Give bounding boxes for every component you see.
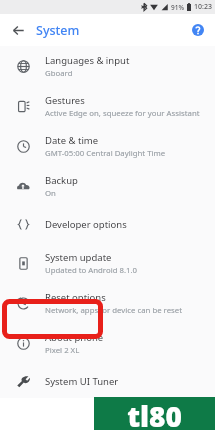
- staticText: Gboard: [45, 68, 73, 79]
- staticText: System UI Tuner: [45, 375, 119, 388]
- button[interactable]: Backup: [0, 166, 215, 206]
- staticText: System update: [45, 251, 112, 264]
- staticText: tl80: [127, 397, 182, 430]
- staticText: Pixel 2 XL: [45, 345, 80, 356]
- staticText: 91%: [171, 3, 184, 12]
- button[interactable]: Languages & input: [0, 46, 215, 86]
- staticText: Updated to Android 8.1.0: [45, 265, 138, 276]
- staticText: Network, apps, or device can be reset: [45, 305, 183, 316]
- button[interactable]: System update: [0, 243, 215, 283]
- staticText: Date & time: [45, 134, 99, 147]
- staticText: Developer options: [45, 218, 127, 231]
- staticText: Gestures: [45, 94, 85, 107]
- button[interactable]: System UI Tuner: [0, 363, 215, 400]
- button[interactable]: About phone: [0, 323, 215, 363]
- button[interactable]: Gestures: [0, 86, 215, 126]
- button[interactable]: Reset options: [0, 283, 215, 323]
- staticText: Reset options: [45, 291, 106, 304]
- staticText: Backup: [45, 174, 78, 187]
- button[interactable]: Date & time: [0, 126, 215, 166]
- staticText: On: [45, 188, 56, 199]
- staticText: Languages & input: [45, 54, 130, 67]
- button[interactable]: Back: [5, 17, 31, 43]
- staticText: GMT-05:00 Central Daylight Time: [45, 148, 166, 159]
- staticText: 10:23: [194, 2, 212, 12]
- staticText: System: [36, 22, 80, 39]
- staticText: Active Edge on, squeeze for your Assista…: [45, 108, 200, 119]
- staticText: About phone: [45, 331, 104, 344]
- button[interactable]: Help: [187, 19, 209, 41]
- button[interactable]: Developer options: [0, 206, 215, 243]
